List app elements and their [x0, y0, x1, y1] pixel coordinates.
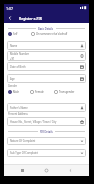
button[interactable]: Home — [41, 165, 52, 176]
staticText: Name — [10, 44, 18, 48]
button[interactable]: Sub Type Of Complaint — [7, 149, 86, 157]
button[interactable]: Father's Name — [7, 103, 86, 112]
button[interactable]: Male — [8, 90, 19, 94]
button[interactable]: Nature Of Complaint — [7, 137, 86, 145]
staticText: Self — [13, 32, 18, 36]
button[interactable]: Age — [7, 74, 86, 83]
staticText: Date of Birth — [10, 65, 26, 69]
button[interactable]: Female — [30, 90, 44, 94]
staticText: 1:07 — [6, 6, 14, 11]
staticText: House No., Street, Village / Town / City — [10, 120, 57, 124]
staticText: Mobile Number — [10, 52, 30, 56]
button[interactable]: Back — [4, 12, 15, 23]
staticText: Nature Of Complaint — [10, 139, 36, 143]
staticText: Present Address — [8, 112, 28, 116]
staticText: Male — [13, 90, 19, 94]
staticText: Sub Type Of Complaint — [10, 151, 38, 155]
button[interactable]: Mobile Number — [7, 51, 86, 61]
staticText: Female — [35, 90, 44, 94]
button[interactable]: Recent apps — [17, 165, 28, 176]
staticText: Transgender — [59, 90, 75, 94]
button[interactable]: Self — [8, 32, 18, 36]
button[interactable]: Back — [65, 165, 76, 176]
staticText: Basic Details — [38, 27, 54, 30]
button[interactable]: House No., Street, Village / Town / City — [7, 117, 86, 126]
button[interactable]: Transgender — [54, 90, 75, 94]
button[interactable]: Date of Birth — [7, 62, 86, 71]
button[interactable]: Name — [7, 41, 86, 50]
staticText: +91 — [10, 57, 15, 61]
staticText: FIR Details — [40, 130, 53, 133]
staticText: Gender — [8, 84, 18, 88]
staticText: Age — [10, 77, 15, 81]
staticText: Father's Name — [10, 106, 28, 110]
button[interactable]: On someone else's behalf — [31, 32, 68, 36]
staticText: Register e-FIR — [19, 16, 42, 20]
staticText: On someone else's behalf — [36, 32, 68, 36]
